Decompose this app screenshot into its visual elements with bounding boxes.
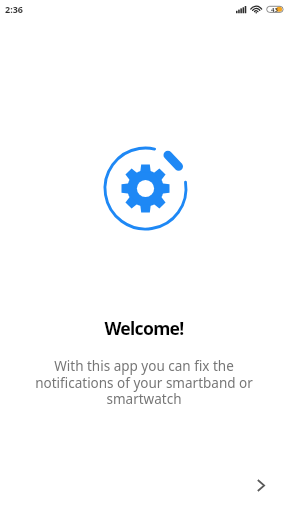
staticText: 43 xyxy=(271,6,278,14)
staticText: With this app you can fix the notificati… xyxy=(32,357,256,408)
staticText: 2:36 xyxy=(5,3,23,15)
button[interactable]: Next xyxy=(241,465,281,505)
staticText: Welcome! xyxy=(104,316,184,340)
